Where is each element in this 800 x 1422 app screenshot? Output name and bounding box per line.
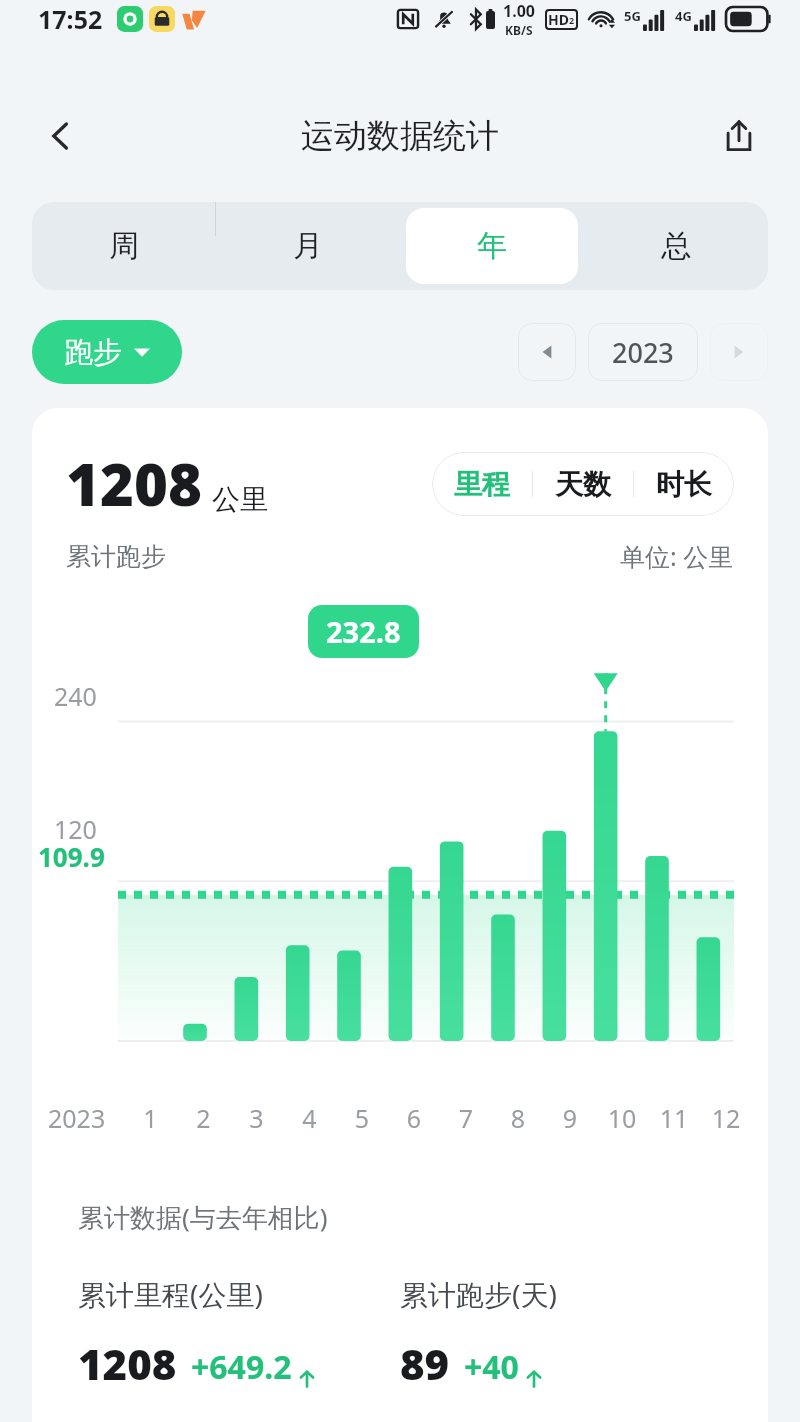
button[interactable]: 总 (590, 208, 762, 284)
staticText: 89 (400, 1335, 450, 1392)
staticText: 总 (661, 227, 691, 265)
button[interactable]: 2023 (588, 323, 698, 381)
staticText: 6 (388, 1101, 440, 1135)
staticText: 11 (648, 1101, 700, 1135)
staticText: 时长 (656, 467, 712, 502)
staticText: 10 (596, 1101, 648, 1135)
staticText: 4G (675, 7, 692, 25)
staticText: +649.2 (191, 1345, 292, 1389)
staticText: 天数 (555, 467, 611, 502)
button[interactable]: 年 (406, 208, 578, 284)
staticText: 12 (700, 1101, 752, 1135)
button[interactable]: Back (30, 105, 92, 167)
button[interactable]: Share (708, 105, 770, 167)
staticText: 运动数据统计 (301, 115, 499, 157)
staticText: 232.8 (326, 612, 401, 651)
staticText: 跑步 (64, 334, 122, 371)
staticText: 2023 (48, 1101, 124, 1135)
staticText: 3 (230, 1101, 283, 1135)
staticText: 2023 (612, 334, 674, 371)
staticText: 1208 (66, 444, 202, 523)
staticText: 单位: 公里 (620, 539, 734, 573)
staticText: +40 (464, 1345, 519, 1389)
staticText: 累计跑步 (66, 541, 166, 572)
staticText: 4 (283, 1101, 336, 1135)
staticText: 累计数据(与去年相比) (78, 1199, 328, 1235)
button[interactable]: 里程 (432, 452, 532, 516)
button[interactable]: Previous year (518, 323, 576, 381)
staticText: 里程 (454, 467, 510, 502)
staticText: 累计里程(公里) (78, 1275, 263, 1313)
staticText: 1.00 (503, 0, 535, 22)
staticText: 8 (492, 1101, 544, 1135)
staticText: 5 (336, 1101, 388, 1135)
staticText: 7 (440, 1101, 492, 1135)
staticText: 1 (124, 1101, 177, 1135)
button[interactable]: 跑步 (32, 320, 182, 384)
staticText: 1208 (78, 1335, 177, 1392)
button[interactable]: 月 (222, 208, 394, 284)
staticText: 120 (54, 812, 97, 846)
staticText: 2 (177, 1101, 230, 1135)
staticText: 月 (293, 227, 323, 265)
staticText: 5G (624, 7, 641, 25)
button[interactable]: 天数 (533, 452, 633, 516)
staticText: 240 (54, 679, 97, 713)
button[interactable]: Next year (710, 323, 768, 381)
button[interactable]: 周 (38, 208, 210, 284)
staticText: 109.9 (38, 839, 105, 874)
staticText: 年 (477, 227, 507, 265)
button[interactable]: 时长 (634, 452, 734, 516)
staticText: 2 (569, 14, 575, 26)
staticText: KB/S (505, 22, 533, 38)
staticText: 17:52 (38, 2, 103, 36)
staticText: 累计跑步(天) (400, 1275, 557, 1313)
staticText: 周 (109, 227, 139, 265)
staticText: 9 (544, 1101, 596, 1135)
staticText: 公里 (212, 482, 268, 517)
staticText: HD (548, 10, 569, 29)
